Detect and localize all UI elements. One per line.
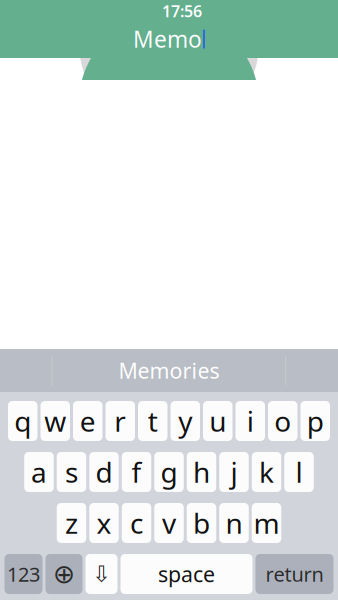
button[interactable]: o [268,401,297,441]
button[interactable]: m [252,503,281,543]
staticText: h [193,453,210,491]
button[interactable]: i [235,401,265,441]
button[interactable]: k [252,452,281,492]
button[interactable]: b [187,503,216,543]
button[interactable]: w [40,401,70,441]
staticText: o [274,402,291,440]
button[interactable]: space [120,554,252,594]
staticText: space [158,560,215,588]
staticText: j [230,453,237,491]
button[interactable]: Next keyboard [45,554,82,594]
button[interactable]: a [24,452,54,492]
staticText: 123 [7,561,40,587]
staticText: k [259,453,274,491]
button[interactable]: y [170,401,200,441]
staticText: t [148,402,158,440]
staticText: d [95,453,112,491]
staticText: s [65,453,78,491]
staticText: ⊕ [53,559,75,589]
staticText: c [130,504,143,542]
staticText: x [96,504,111,542]
staticText: r [114,402,126,440]
button[interactable]: l [284,452,314,492]
staticText: w [44,402,66,440]
button[interactable]: return [255,554,333,594]
staticText: v [162,504,176,542]
button[interactable]: d [89,452,119,492]
staticText: e [80,402,96,440]
staticText: f [131,453,141,491]
staticText: z [65,504,78,542]
button[interactable]: t [138,401,167,441]
staticText: b [193,504,210,542]
button[interactable]: q [8,401,37,441]
staticText: n [225,504,242,542]
button[interactable]: x [89,503,119,543]
staticText: Memories [118,356,219,385]
staticText: return [265,561,323,587]
button[interactable]: h [187,452,216,492]
staticText: 17:56 [162,0,202,22]
staticText: p [307,402,324,440]
button[interactable]: c [122,503,151,543]
staticText: m [253,504,279,542]
staticText: i [247,402,254,440]
button[interactable]: s [57,452,86,492]
button[interactable]: u [203,401,232,441]
button[interactable]: p [300,401,330,441]
button[interactable]: n [219,503,249,543]
button[interactable]: Dictation [85,554,117,594]
button[interactable]: f [122,452,151,492]
staticText: l [295,453,302,491]
button[interactable]: r [105,401,135,441]
staticText: u [209,402,226,440]
button[interactable]: v [154,503,184,543]
staticText: y [178,402,192,440]
staticText: Memo [133,24,202,54]
staticText: a [31,453,47,491]
button[interactable]: g [154,452,184,492]
button[interactable]: 123 [4,554,42,594]
staticText: q [14,402,31,440]
button[interactable]: j [219,452,249,492]
button[interactable]: Memories [53,349,285,392]
button[interactable]: z [57,503,86,543]
staticText: g [160,453,177,491]
staticText: ⇩ [92,561,111,587]
button[interactable]: e [73,401,102,441]
